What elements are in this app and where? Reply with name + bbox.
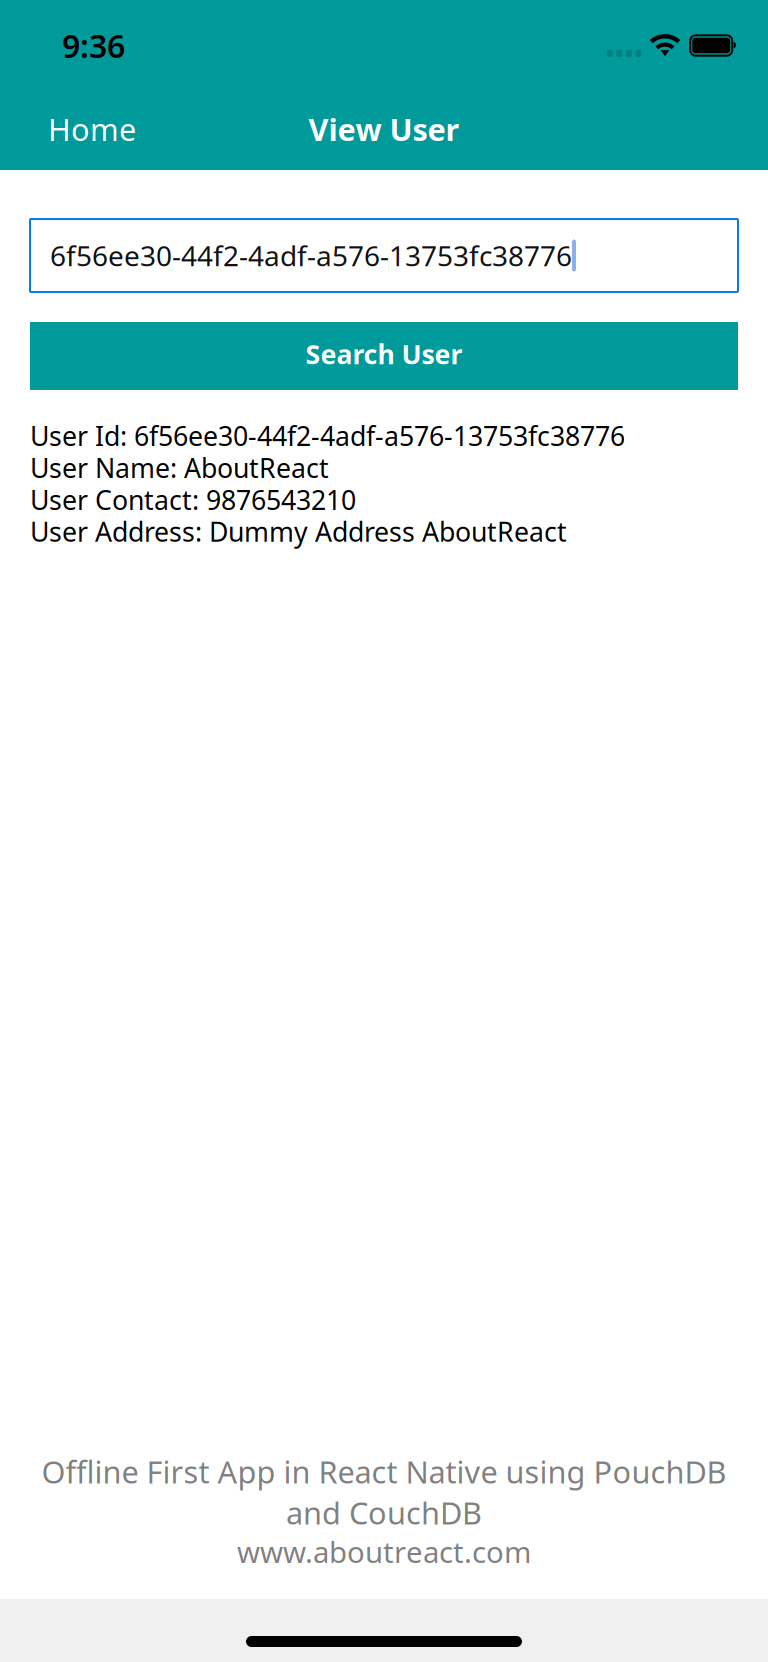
staticText: 6f56ee30-44f2-4adf-a576-13753fc38776: [50, 237, 572, 274]
staticText: User Address: Dummy Address AboutReact: [30, 514, 567, 549]
button[interactable]: Home: [0, 99, 152, 159]
staticText: Home: [48, 109, 136, 149]
staticText: and CouchDB: [286, 1492, 482, 1533]
staticText: User Id: 6f56ee30-44f2-4adf-a576-13753fc…: [30, 418, 625, 453]
staticText: Search User: [305, 336, 462, 372]
staticText: Offline First App in React Native using …: [41, 1451, 726, 1492]
staticText: User Contact: 9876543210: [30, 482, 356, 517]
button[interactable]: Search User: [30, 322, 738, 390]
staticText: View User: [308, 109, 459, 149]
staticText: www.aboutreact.com: [237, 1532, 531, 1571]
staticText: User Name: AboutReact: [30, 450, 329, 485]
button[interactable]: 6f56ee30-44f2-4adf-a576-13753fc38776: [30, 219, 738, 292]
staticText: 9:36: [62, 24, 125, 67]
